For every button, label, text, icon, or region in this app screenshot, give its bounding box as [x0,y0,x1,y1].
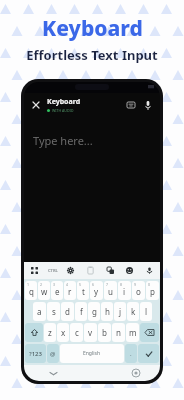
staticText: e [55,286,60,297]
button[interactable]: Translate [104,264,117,277]
button[interactable]: m [126,323,139,342]
staticText: x [61,327,66,338]
button[interactable]: ?123 [25,344,46,363]
button[interactable]: Backspace [140,323,159,342]
button[interactable]: Settings [64,264,77,277]
button[interactable]: a [33,302,46,321]
button[interactable]: Voice input [141,98,155,112]
staticText: v [88,327,93,338]
staticText: k [131,306,136,317]
staticText: l [145,306,148,317]
staticText: Effortless Text Input [26,46,158,64]
button[interactable]: n [112,323,125,342]
button[interactable]: CTRL [48,268,58,273]
button[interactable]: English [60,344,124,363]
staticText: z [48,327,52,338]
button[interactable]: Hide keyboard [50,370,57,377]
staticText: h [105,306,110,317]
staticText: n [116,327,121,338]
button[interactable]: z [44,323,56,342]
staticText: 8 [120,282,123,287]
staticText: w [41,286,48,297]
staticText: o [136,286,141,297]
button[interactable]: x [57,323,69,342]
staticText: 7 [106,282,109,287]
button[interactable]: d [61,302,74,321]
button[interactable]: s [47,302,60,321]
staticText: j [119,306,122,317]
staticText: 3 [53,282,56,287]
button[interactable]: Apps [28,264,41,277]
button[interactable]: . [125,344,137,363]
button[interactable]: 5 [77,281,89,300]
button[interactable]: Enter [138,344,159,363]
staticText: p [150,286,155,297]
button[interactable]: c [70,323,83,342]
staticText: WITH AUDIO [52,108,74,113]
staticText: r [68,286,72,297]
staticText: a [37,306,42,317]
staticText: s [52,306,56,317]
staticText: @ [50,350,56,358]
button[interactable]: 4 [64,281,76,300]
staticText: f [80,306,83,317]
button[interactable]: Settings [132,369,140,377]
button[interactable]: 6 [90,281,103,300]
button[interactable]: Clipboard [84,264,97,277]
staticText: m [129,327,137,338]
staticText: 6 [92,282,95,287]
button[interactable]: 3 [51,281,63,300]
staticText: i [123,286,126,297]
button[interactable]: g [88,302,100,321]
staticText: u [108,286,113,297]
staticText: t [82,286,85,297]
staticText: Keyboard [42,14,143,43]
button[interactable]: 8 [118,281,131,300]
button[interactable]: Shift [25,323,43,342]
button[interactable]: f [75,302,87,321]
button[interactable]: @ [47,344,59,363]
button[interactable]: Voice typing [143,264,156,277]
staticText: English [83,350,101,357]
staticText: d [65,306,70,317]
button[interactable]: v [84,323,97,342]
button[interactable]: k [127,302,139,321]
button[interactable]: l [140,302,152,321]
staticText: q [29,286,34,297]
staticText: 4 [66,282,69,287]
button[interactable]: Emoji [123,264,136,277]
button[interactable]: Close [29,98,43,112]
staticText: 0 [148,282,151,287]
staticText: g [92,306,97,317]
staticText: y [94,286,99,297]
staticText: 9 [134,282,137,287]
staticText: c [75,327,79,338]
button[interactable]: Keyboard layout [124,98,138,112]
staticText: 5 [79,282,82,287]
staticText: Type here... [33,133,93,148]
button[interactable]: b [98,323,111,342]
button[interactable]: 9 [132,281,145,300]
staticText: ?123 [29,350,42,358]
staticText: . [130,350,132,358]
button[interactable]: 2 [38,281,50,300]
staticText: b [102,327,107,338]
button[interactable]: 0 [146,281,159,300]
button[interactable]: 1 [25,281,37,300]
button[interactable]: j [114,302,126,321]
staticText: 2 [40,282,43,287]
staticText: Keyboard [47,97,81,107]
button[interactable]: h [101,302,113,321]
button[interactable]: 7 [104,281,117,300]
staticText: 1 [27,282,30,287]
